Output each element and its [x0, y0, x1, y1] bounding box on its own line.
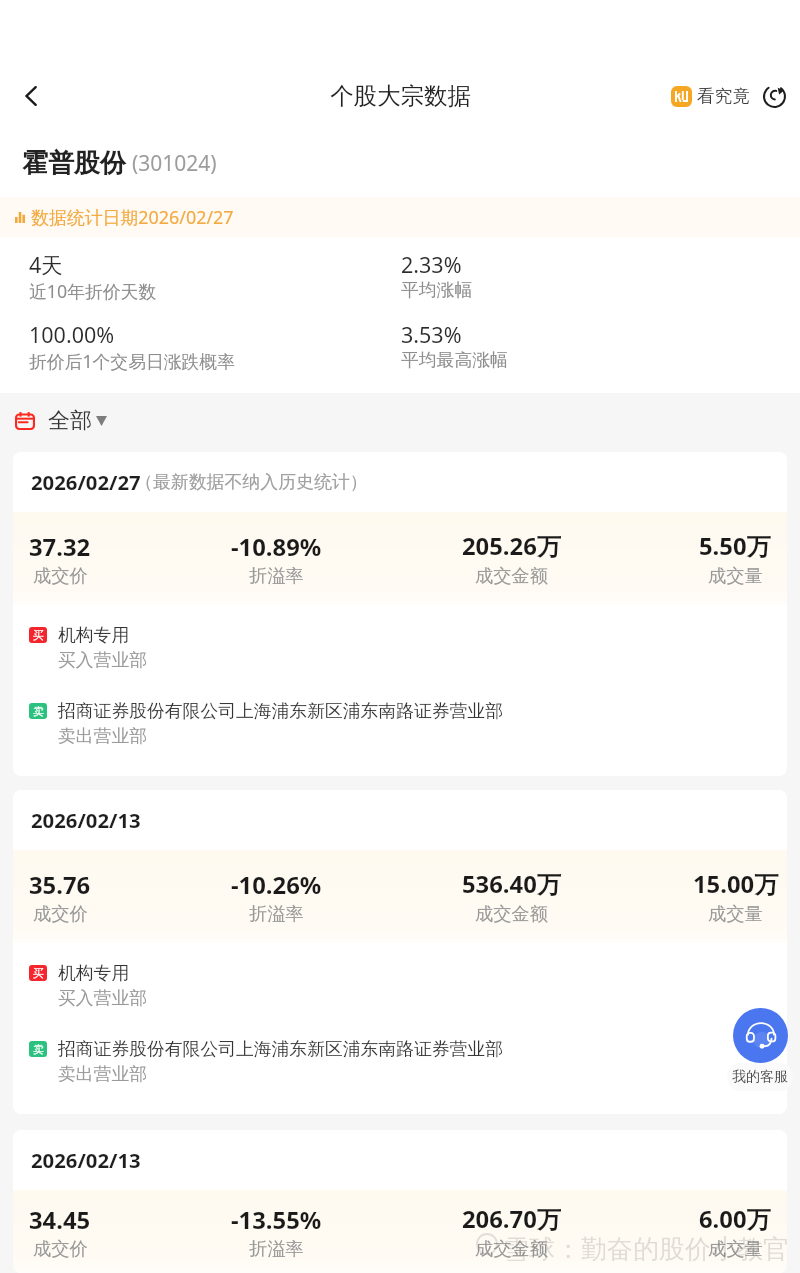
staticText: 招商证券股份有限公司上海浦东新区浦东南路证券营业部 — [58, 700, 503, 722]
button[interactable]: Back — [6, 71, 56, 121]
button[interactable]: 全部 — [15, 401, 117, 441]
button[interactable]: 我的客服 — [727, 1063, 793, 1091]
staticText: 205.26万 — [462, 530, 561, 563]
staticText: 34.45 — [29, 1204, 91, 1236]
staticText: 2026/02/27 — [31, 468, 141, 496]
staticText: 成交量 — [708, 1237, 763, 1260]
staticText: 个股大宗数据 — [330, 81, 471, 111]
staticText: 3.53% — [401, 320, 462, 349]
staticText: 平均最高涨幅 — [401, 349, 508, 371]
staticText: 成交金额 — [475, 1237, 549, 1260]
staticText: 买 — [33, 966, 44, 980]
staticText: 机构专用 — [58, 962, 130, 984]
staticText: 35.76 — [29, 869, 91, 901]
button[interactable]: Refresh — [758, 80, 790, 112]
staticText: 15.00万 — [693, 868, 778, 901]
staticText: -10.89% — [231, 531, 322, 563]
staticText: 折溢率 — [249, 564, 304, 587]
staticText: 成交量 — [708, 564, 763, 587]
button[interactable]: Customer service — [733, 1008, 788, 1063]
staticText: 成交价 — [33, 1237, 88, 1260]
staticText: （最新数据不纳入历史统计） — [135, 471, 368, 494]
button[interactable]: 2026/02/13 — [13, 1130, 787, 1273]
staticText: (301024) — [132, 149, 217, 178]
button[interactable]: 2026/02/27 — [13, 452, 787, 776]
button[interactable]: 看究竟 — [663, 76, 758, 116]
staticText: 数据统计日期2026/02/27 — [31, 205, 234, 229]
staticText: 2026/02/13 — [31, 806, 141, 834]
staticText: 100.00% — [29, 320, 115, 349]
staticText: 2026/02/13 — [31, 1146, 141, 1174]
staticText: -10.26% — [231, 869, 322, 901]
staticText: 卖出营业部 — [58, 725, 147, 747]
staticText: 卖 — [33, 1042, 44, 1056]
staticText: 霍普股份 — [22, 147, 126, 180]
staticText: 折价后1个交易日涨跌概率 — [29, 349, 235, 373]
button[interactable]: 2026/02/13 — [13, 790, 787, 1114]
staticText: 看究竟 — [697, 85, 750, 107]
staticText: 4天 — [29, 250, 63, 279]
staticText: 成交金额 — [475, 902, 549, 925]
staticText: 买入营业部 — [58, 987, 147, 1009]
staticText: 招商证券股份有限公司上海浦东新区浦东南路证券营业部 — [58, 1038, 503, 1060]
staticText: 我的客服 — [732, 1068, 788, 1086]
staticText: 6.00万 — [699, 1203, 771, 1236]
staticText: 5.50万 — [699, 530, 771, 563]
staticText: 37.32 — [29, 531, 91, 563]
staticText: 雪球：勤奋的股价小教官 — [503, 1233, 789, 1266]
staticText: 206.70万 — [462, 1203, 561, 1236]
staticText: 折溢率 — [249, 1237, 304, 1260]
staticText: 卖 — [33, 704, 44, 718]
staticText: -13.55% — [231, 1204, 322, 1236]
staticText: 机构专用 — [58, 624, 130, 646]
staticText: 成交价 — [33, 902, 88, 925]
staticText: 买 — [33, 628, 44, 642]
staticText: 平均涨幅 — [401, 279, 473, 301]
staticText: 成交金额 — [475, 564, 549, 587]
staticText: 近10年折价天数 — [29, 279, 157, 303]
staticText: 全部 — [48, 407, 92, 435]
staticText: 2.33% — [401, 250, 462, 279]
staticText: 成交价 — [33, 564, 88, 587]
staticText: 536.40万 — [462, 868, 561, 901]
staticText: 折溢率 — [249, 902, 304, 925]
staticText: 成交量 — [708, 902, 763, 925]
staticText: 卖出营业部 — [58, 1063, 147, 1085]
staticText: 买入营业部 — [58, 649, 147, 671]
